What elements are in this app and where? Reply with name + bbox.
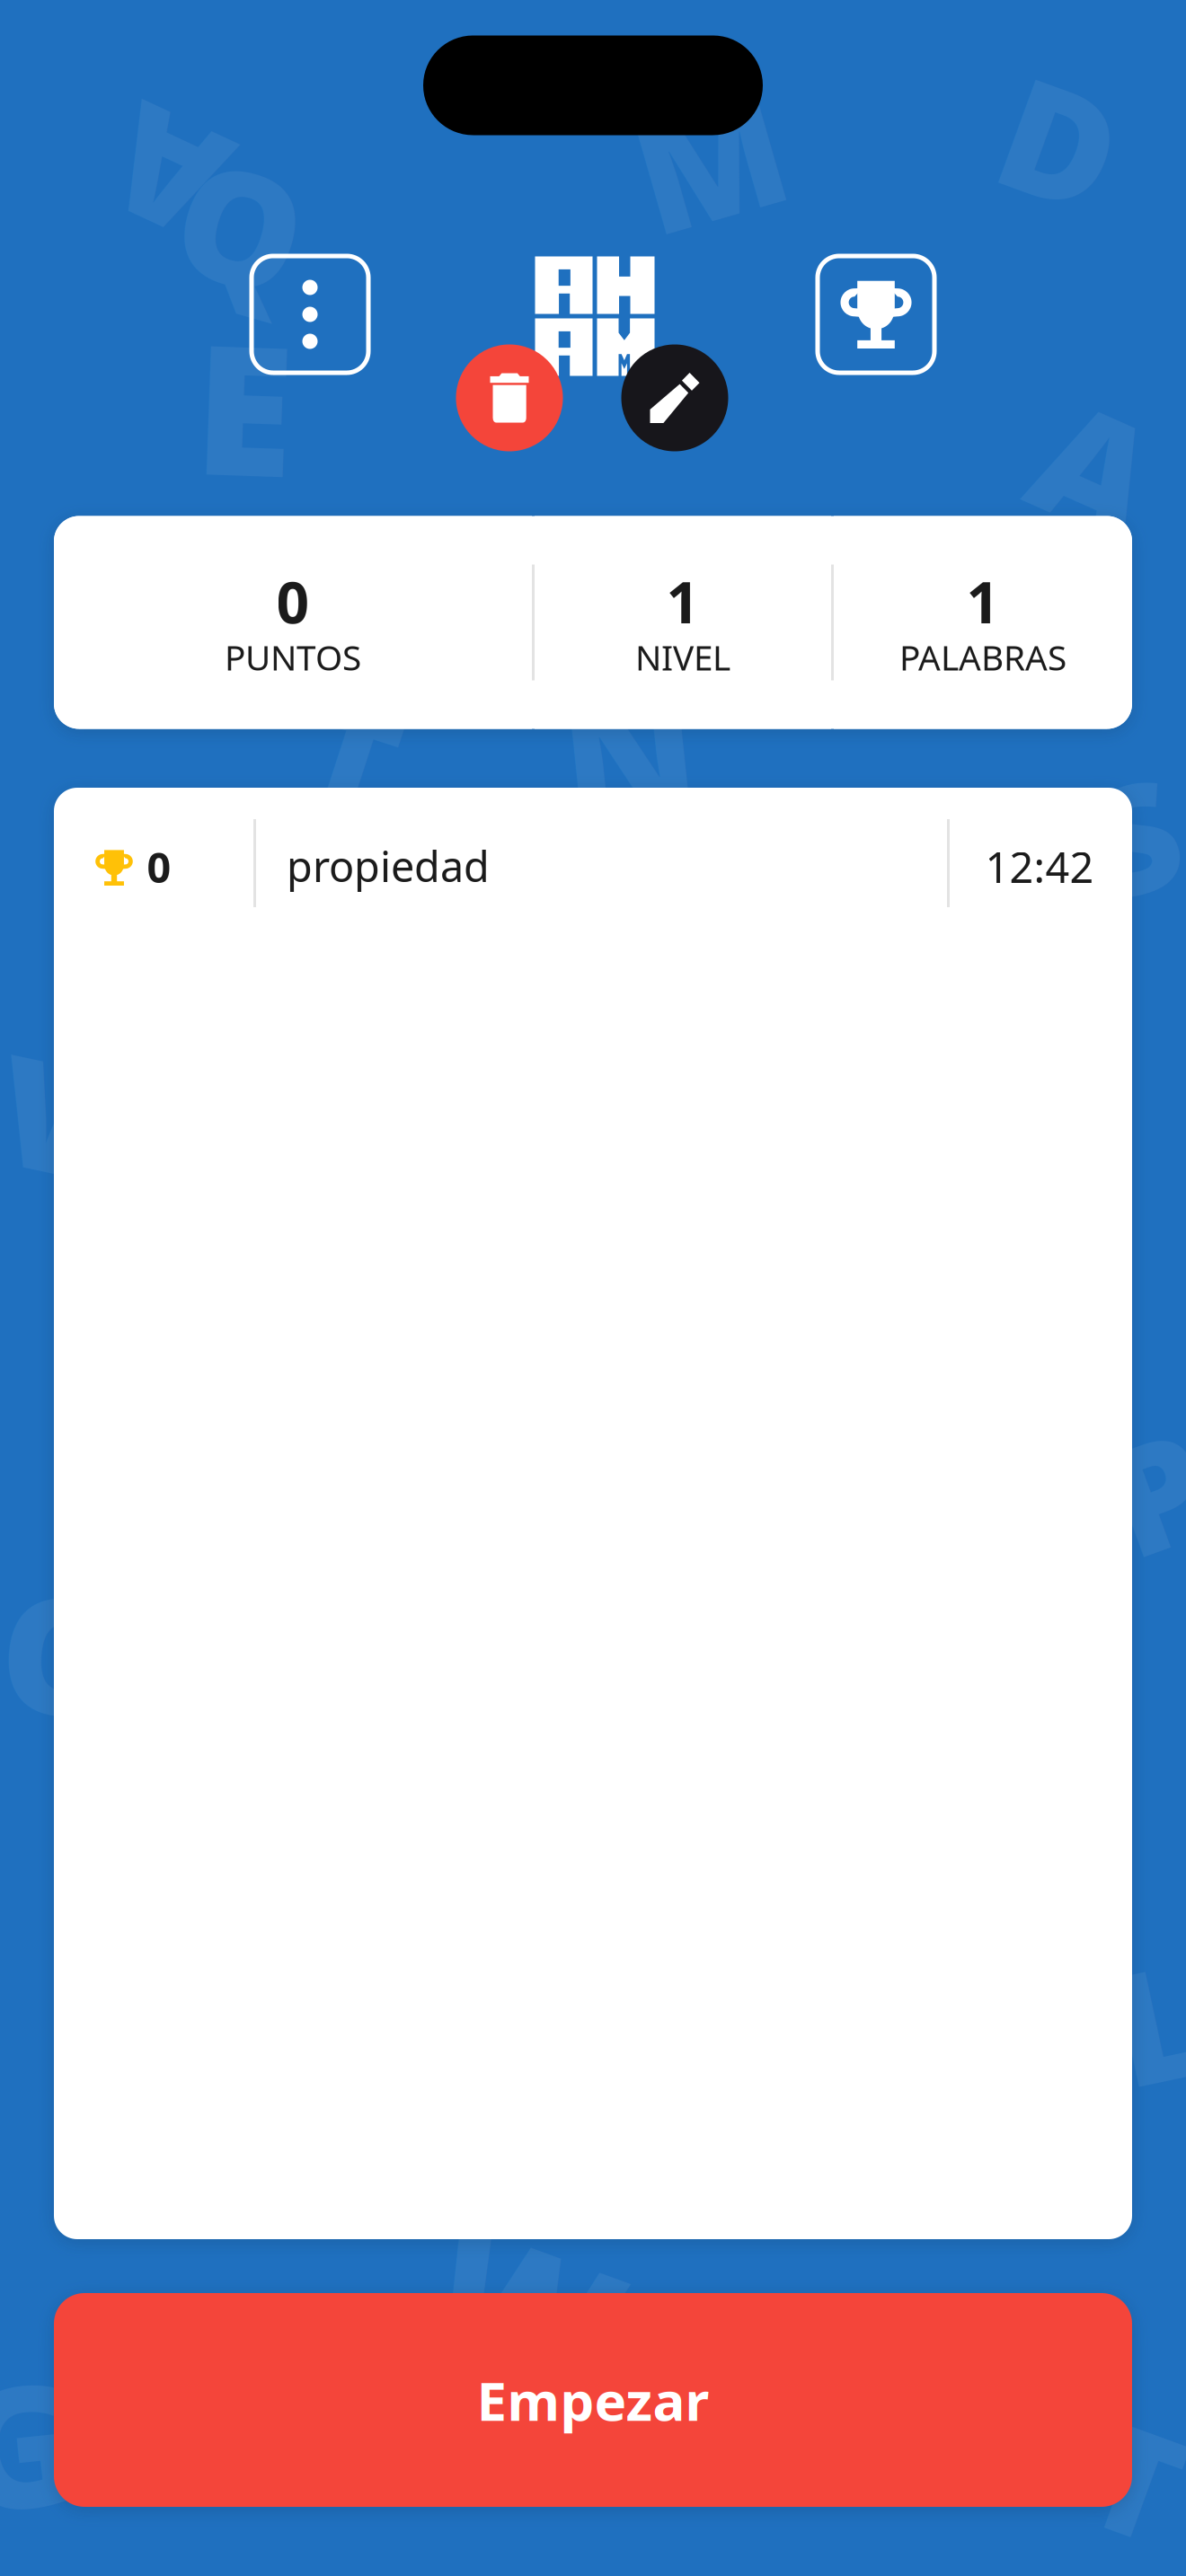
staticText: A bbox=[1040, 364, 1153, 570]
staticText: Q bbox=[179, 121, 303, 328]
staticText: W bbox=[432, 2189, 619, 2428]
staticText: M bbox=[636, 58, 784, 262]
staticText: 1 bbox=[966, 563, 1000, 640]
staticText: 0 bbox=[276, 563, 310, 640]
button[interactable]: Logros bbox=[818, 256, 934, 373]
staticText: N bbox=[562, 646, 696, 859]
staticText: 0 bbox=[147, 839, 171, 895]
staticText: V bbox=[0, 1014, 105, 1214]
staticText: P bbox=[1111, 1392, 1186, 1590]
button[interactable]: Empezar bbox=[54, 2293, 1132, 2507]
staticText: D bbox=[1004, 40, 1116, 244]
staticText: T bbox=[1093, 2382, 1180, 2576]
staticText: 12:42 bbox=[985, 839, 1094, 895]
staticText: 1 bbox=[666, 563, 699, 640]
staticText: Empezar bbox=[477, 2364, 709, 2436]
staticText: NIVEL bbox=[635, 634, 730, 680]
staticText: L bbox=[1114, 1918, 1186, 2124]
staticText: O bbox=[1, 1546, 128, 1759]
staticText: propiedad bbox=[287, 838, 490, 894]
staticText: S bbox=[1091, 737, 1177, 934]
staticText: PUNTOS bbox=[225, 634, 361, 680]
staticText: A bbox=[112, 75, 221, 274]
button[interactable]: Borrar bbox=[456, 344, 563, 451]
staticText: PALABRAS bbox=[899, 634, 1067, 680]
staticText: E bbox=[195, 287, 294, 525]
button[interactable]: Editar bbox=[621, 344, 728, 451]
staticText: T bbox=[308, 660, 396, 858]
button[interactable]: Menú bbox=[252, 256, 368, 373]
button[interactable]: 0 bbox=[54, 788, 1132, 939]
staticText: G bbox=[0, 2332, 80, 2554]
